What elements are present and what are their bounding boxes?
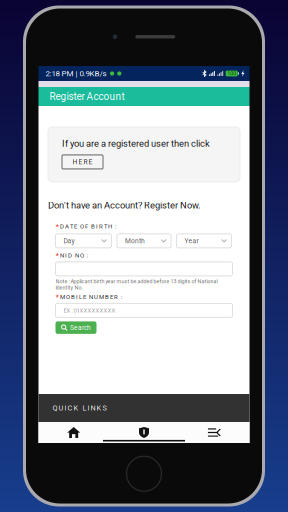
button[interactable]: Month	[117, 234, 171, 248]
button[interactable]	[55, 262, 232, 276]
staticText: Year	[184, 237, 198, 245]
button[interactable]: Back	[109, 422, 179, 443]
staticText: 2:18 PM | 0.9KB/s	[45, 69, 106, 78]
staticText: Day	[63, 237, 74, 245]
button[interactable]: H E R E	[62, 155, 103, 169]
staticText: 100	[227, 70, 236, 77]
staticText: Q U I C K L I N K S	[52, 404, 106, 412]
staticText: D A T E O F B I R T H :	[60, 223, 116, 230]
staticText: N I D N O :	[60, 252, 88, 259]
staticText: Note : Applicant birth year must be adde…	[55, 278, 217, 291]
staticText: H E R E	[72, 158, 92, 166]
staticText: *	[55, 251, 58, 260]
button[interactable]: EX : 01XXXXXXXXX	[55, 303, 232, 317]
staticText: *	[55, 222, 58, 231]
button[interactable]: Year	[176, 234, 231, 248]
staticText: If you are a registered user then click	[62, 138, 210, 149]
staticText: M O B I L E N U M B E R :	[60, 293, 122, 300]
staticText: Month	[125, 237, 145, 245]
button[interactable]: Search	[55, 321, 96, 334]
staticText: *	[55, 292, 58, 302]
staticText: Don't have an Account? Register Now.	[48, 200, 200, 211]
staticText: Register Account	[49, 91, 124, 102]
staticText: EX : 01XXXXXXXXX	[63, 307, 115, 314]
button[interactable]: Recent apps	[179, 422, 249, 443]
button[interactable]: Home	[38, 422, 109, 443]
staticText: Search	[70, 324, 91, 331]
button[interactable]: Day	[55, 234, 111, 248]
